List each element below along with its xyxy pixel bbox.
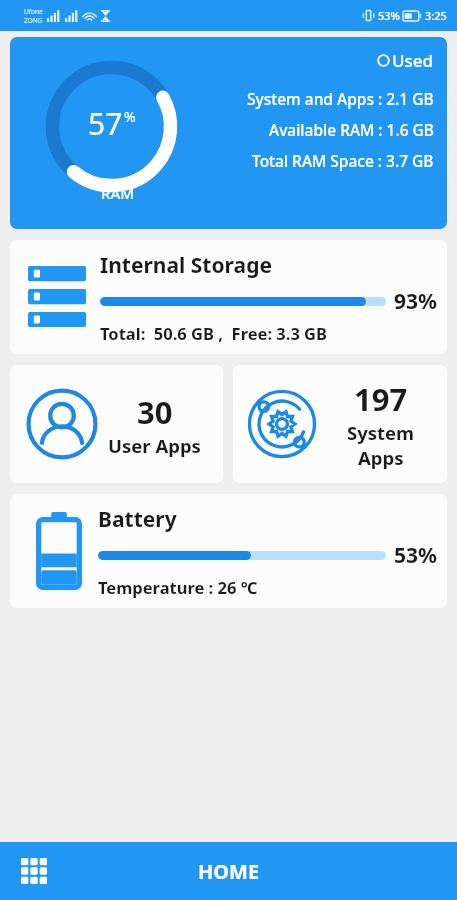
staticText: HOME (198, 858, 260, 885)
button[interactable]: HOME (172, 846, 286, 897)
staticText: System and Apps : 2.1 GB (247, 88, 434, 109)
staticText: Available RAM : 1.6 GB (269, 119, 434, 140)
staticText: 3:25 (425, 8, 447, 23)
staticText: % (124, 107, 136, 126)
button[interactable]: All apps (8, 845, 60, 897)
staticText: Apps (358, 445, 404, 470)
button[interactable]: Internal Storage (10, 240, 447, 354)
staticText: 53% (378, 8, 400, 23)
staticText: 53% (394, 541, 437, 570)
staticText: 93% (394, 287, 437, 316)
staticText: RAM (101, 183, 135, 203)
staticText: Total: 50.6 GB , Free: 3.3 GB (100, 322, 328, 344)
staticText: Used (392, 49, 434, 72)
staticText: Total RAM Space : 3.7 GB (252, 150, 434, 171)
staticText: Ufone (24, 7, 43, 16)
staticText: 197 (354, 378, 408, 420)
staticText: User Apps (108, 433, 201, 458)
staticText: ZONG (24, 16, 43, 25)
button[interactable]: 30 (10, 365, 223, 483)
button[interactable]: 57 (10, 37, 447, 229)
staticText: System (347, 420, 415, 445)
staticText: Temperature : 26 ℃ (98, 576, 258, 598)
button[interactable]: 197 (233, 365, 447, 483)
staticText: 30 (137, 391, 173, 433)
staticText: Battery (98, 505, 177, 534)
staticText: 57 (88, 103, 123, 144)
staticText: Internal Storage (100, 251, 272, 280)
button[interactable]: Battery (10, 494, 447, 608)
